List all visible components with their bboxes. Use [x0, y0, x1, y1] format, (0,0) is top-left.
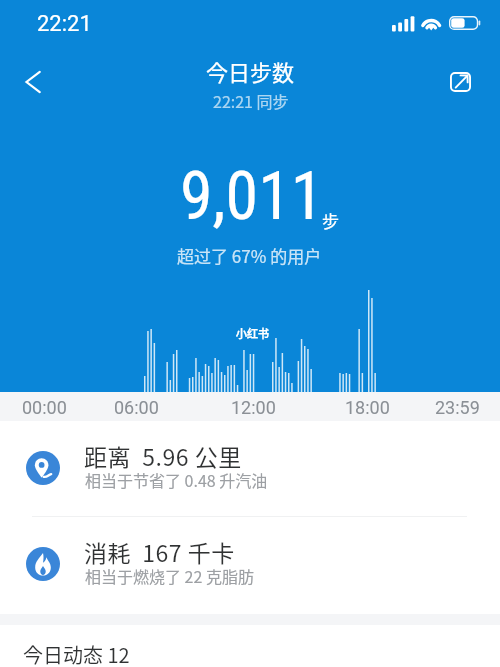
staticText: 22:21 同步: [213, 89, 289, 111]
staticText: 22:21: [37, 11, 92, 37]
staticText: 06:00: [114, 397, 159, 418]
button[interactable]: Back: [10, 59, 56, 105]
button[interactable]: 消耗 167 千卡: [0, 517, 500, 613]
staticText: 12:00: [231, 397, 276, 418]
staticText: 消耗 167 千卡: [84, 535, 235, 568]
staticText: 今日动态 12: [23, 640, 130, 667]
staticText: 23:59: [435, 397, 480, 418]
staticText: 步: [322, 208, 339, 233]
button[interactable]: Share: [437, 59, 483, 105]
staticText: 相当于燃烧了 22 克脂肪: [85, 564, 254, 587]
staticText: 超过了 67% 的用户: [177, 243, 322, 268]
staticText: 9,011: [180, 158, 324, 235]
staticText: 18:00: [345, 397, 390, 418]
staticText: 距离 5.96 公里: [84, 439, 242, 472]
button[interactable]: 距离 5.96 公里: [0, 421, 500, 517]
staticText: 相当于节省了 0.48 升汽油: [85, 468, 268, 491]
staticText: 小红书: [236, 325, 269, 341]
staticText: 00:00: [22, 397, 67, 418]
staticText: 今日步数: [206, 55, 295, 87]
